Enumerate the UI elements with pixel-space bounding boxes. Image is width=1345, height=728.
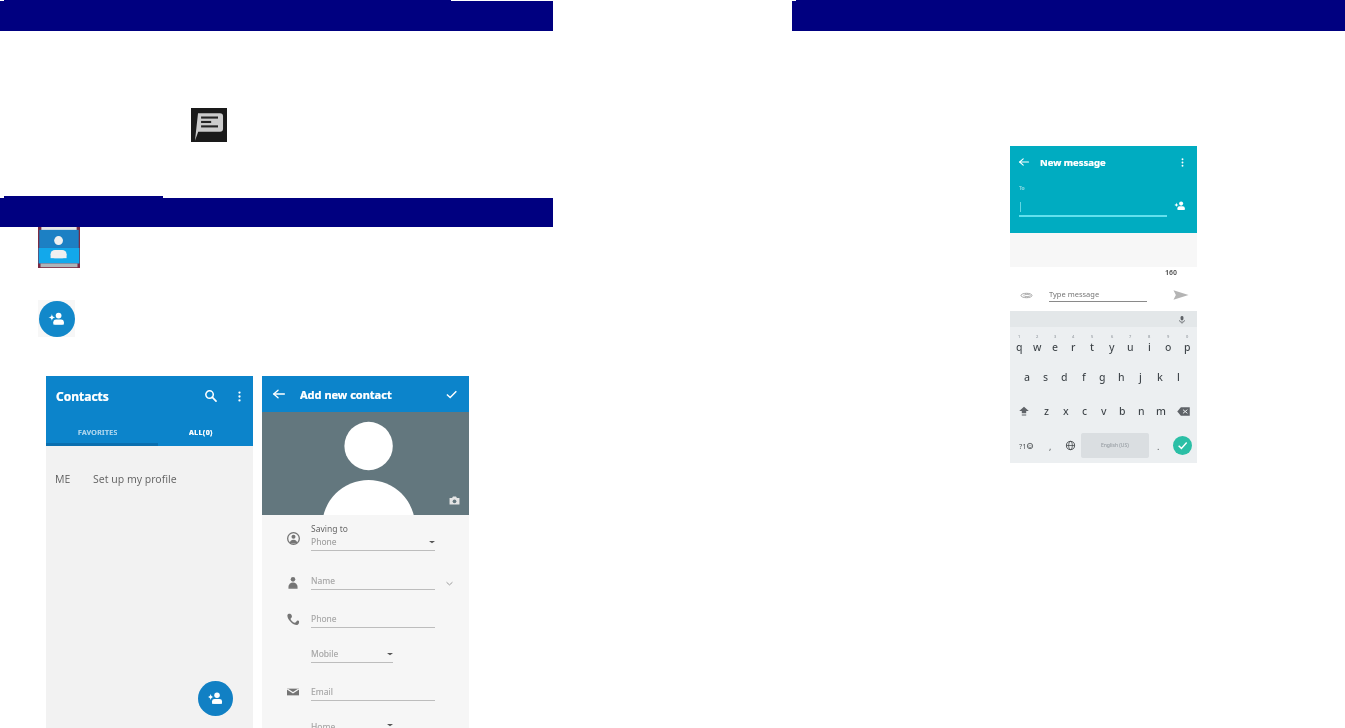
staticText: z	[1044, 404, 1050, 418]
staticText: Contacts	[56, 388, 109, 404]
staticText: Add new contact	[300, 387, 392, 402]
staticText: p	[1184, 340, 1191, 354]
button[interactable]: j	[1131, 360, 1150, 394]
staticText: 9	[1167, 334, 1170, 339]
button[interactable]: Voice input	[1176, 314, 1187, 325]
button[interactable]: Email	[271, 683, 435, 701]
button[interactable]: a	[1018, 360, 1036, 394]
staticText: Mobile	[311, 648, 339, 660]
button[interactable]: 5	[1083, 327, 1102, 360]
staticText: 0	[1186, 334, 1189, 339]
button[interactable]: 1	[1010, 327, 1028, 360]
staticText: Email	[311, 686, 333, 698]
button[interactable]: c	[1075, 394, 1094, 428]
staticText: Type message	[1049, 289, 1100, 299]
button[interactable]: Save	[443, 386, 459, 402]
staticText: h	[1118, 370, 1125, 384]
staticText: s	[1043, 370, 1049, 384]
button[interactable]: x	[1056, 394, 1075, 428]
button[interactable]: Add contact	[39, 301, 75, 337]
button[interactable]: Change photo	[448, 494, 461, 507]
staticText: Phone	[311, 536, 337, 548]
button[interactable]: ME	[46, 461, 253, 496]
button[interactable]: Space	[1081, 433, 1149, 458]
staticText: a	[1024, 370, 1031, 384]
button[interactable]: n	[1132, 394, 1151, 428]
button[interactable]: 2	[1028, 327, 1046, 360]
button[interactable]: z	[1037, 394, 1056, 428]
staticText: ME	[55, 472, 71, 486]
button[interactable]: h	[1112, 360, 1131, 394]
button[interactable]: f	[1074, 360, 1093, 394]
staticText: r	[1071, 340, 1076, 354]
button[interactable]: b	[1113, 394, 1132, 428]
staticText: y	[1109, 340, 1115, 354]
staticText: 8	[1148, 334, 1151, 339]
staticText: u	[1127, 340, 1134, 354]
staticText: 3	[1054, 334, 1057, 339]
button[interactable]: Shift	[1010, 394, 1037, 428]
button[interactable]: ,	[1041, 428, 1059, 463]
button[interactable]: Backspace	[1170, 394, 1197, 428]
button[interactable]: 0	[1178, 327, 1197, 360]
button[interactable]: Enter	[1173, 436, 1192, 455]
button[interactable]: Language	[1059, 428, 1081, 463]
staticText: w	[1033, 340, 1042, 354]
button[interactable]: Contacts app	[38, 227, 80, 268]
button[interactable]: Search	[201, 386, 221, 406]
button[interactable]: d	[1055, 360, 1074, 394]
button[interactable]: Back	[1017, 155, 1031, 169]
button[interactable]: Attach	[1019, 288, 1033, 302]
button[interactable]: Saving to	[271, 523, 435, 551]
button[interactable]: Add recipient	[1171, 199, 1189, 213]
staticText: t	[1090, 340, 1095, 354]
staticText: Home	[311, 721, 336, 728]
button[interactable]: 6	[1102, 327, 1121, 360]
staticText: 5	[1091, 334, 1094, 339]
staticText: o	[1165, 340, 1172, 354]
button[interactable]: Back	[270, 385, 288, 403]
button[interactable]: g	[1093, 360, 1112, 394]
button[interactable]: l	[1169, 360, 1188, 394]
staticText: l	[1177, 370, 1180, 384]
staticText: c	[1082, 404, 1088, 418]
staticText: n	[1138, 404, 1145, 418]
staticText: v	[1101, 404, 1107, 418]
button[interactable]: More options	[1176, 156, 1188, 168]
staticText: 2	[1036, 334, 1039, 339]
staticText: j	[1139, 370, 1142, 384]
staticText: 7	[1129, 334, 1132, 339]
button[interactable]: k	[1150, 360, 1169, 394]
button[interactable]: More options	[230, 387, 248, 405]
button[interactable]: FAVORITES	[46, 420, 149, 446]
button[interactable]: Mobile	[271, 648, 435, 663]
button[interactable]: Send	[1172, 286, 1190, 304]
button[interactable]: 4	[1064, 327, 1083, 360]
button[interactable]: ALL(0)	[149, 420, 253, 446]
staticText: x	[1063, 404, 1069, 418]
staticText: Set up my profile	[93, 472, 177, 486]
button[interactable]: Phone	[271, 610, 435, 628]
button[interactable]: s	[1036, 360, 1055, 394]
staticText: g	[1099, 370, 1106, 384]
button[interactable]: Messaging	[191, 108, 227, 142]
button[interactable]: 7	[1121, 327, 1140, 360]
button[interactable]: 8	[1140, 327, 1159, 360]
button[interactable]: v	[1094, 394, 1113, 428]
staticText: To	[1019, 185, 1025, 192]
button[interactable]: Expand name	[441, 575, 457, 591]
button[interactable]: 3	[1046, 327, 1064, 360]
button[interactable]: Home	[271, 721, 435, 728]
button[interactable]: Symbols	[1010, 428, 1041, 463]
button[interactable]: Name	[271, 573, 435, 591]
staticText: FAVORITES	[78, 428, 118, 438]
staticText: ALL(0)	[189, 428, 213, 438]
button[interactable]: 9	[1159, 327, 1178, 360]
button[interactable]: m	[1151, 394, 1170, 428]
staticText: ?1	[1019, 441, 1027, 451]
staticText: .	[1157, 440, 1160, 452]
button[interactable]: .	[1149, 428, 1167, 463]
staticText: New message	[1040, 156, 1106, 169]
staticText: b	[1119, 404, 1126, 418]
button[interactable]: Add contact	[198, 681, 233, 716]
